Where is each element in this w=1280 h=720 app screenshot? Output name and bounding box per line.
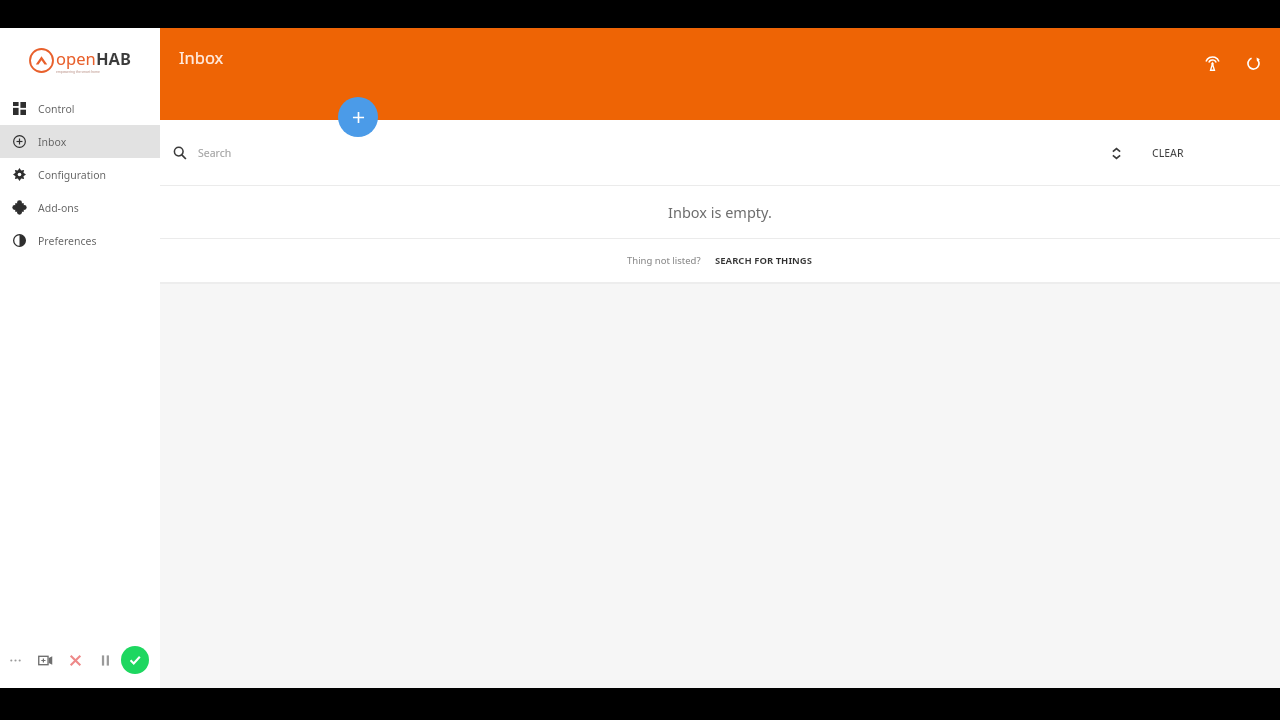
button[interactable]: Configuration (0, 158, 160, 191)
staticText: Thing not listed? (627, 254, 701, 267)
staticText: Inbox is empty. (668, 202, 772, 222)
button[interactable]: Sort (1102, 139, 1130, 167)
button[interactable]: SEARCH FOR THINGS (713, 249, 814, 272)
staticText: Preferences (38, 234, 97, 248)
staticText: CLEAR (1152, 146, 1184, 160)
staticText: SEARCH FOR THINGS (715, 254, 812, 267)
staticText: open (56, 47, 96, 69)
button[interactable]: Discover things (1197, 48, 1227, 78)
staticText: Control (38, 102, 75, 116)
button[interactable]: Stop (61, 646, 90, 675)
button[interactable]: Add (338, 97, 378, 137)
staticText: Add-ons (38, 201, 79, 215)
button[interactable]: More options (1, 646, 29, 674)
staticText: Search (198, 146, 232, 160)
button[interactable]: CLEAR (1148, 140, 1188, 166)
staticText: HAB (96, 47, 132, 69)
button[interactable]: Add-ons (0, 191, 160, 224)
button[interactable]: Record video (31, 646, 60, 675)
button[interactable]: Done (121, 646, 149, 674)
button[interactable]: Control (0, 92, 160, 125)
button[interactable]: Search (160, 120, 1280, 185)
staticText: Configuration (38, 168, 107, 182)
button[interactable]: Preferences (0, 224, 160, 257)
staticText: Inbox (38, 135, 67, 149)
button[interactable]: Pause (91, 646, 120, 675)
button[interactable]: Refresh (1238, 48, 1268, 78)
staticText: Inbox (179, 46, 224, 68)
button[interactable]: Inbox (0, 125, 160, 158)
staticText: empowering the smart home (56, 70, 100, 74)
